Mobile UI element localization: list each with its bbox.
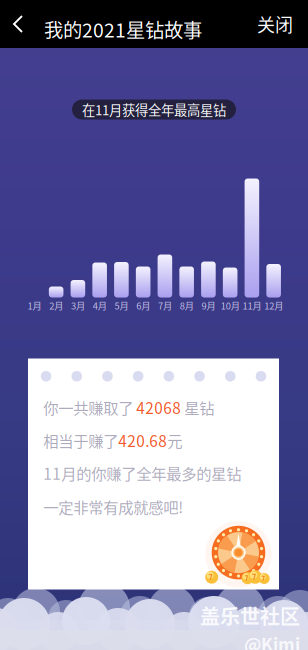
staticText: 11月 — [242, 299, 261, 312]
staticText: 11月的你赚了全年最多的星钻 — [43, 462, 241, 484]
staticText: 关闭 — [257, 11, 293, 37]
staticText: 6月 — [136, 299, 150, 312]
staticText: @Kimi — [244, 631, 300, 650]
staticText: 星钻 — [181, 396, 214, 418]
staticText: 12月 — [264, 299, 283, 312]
staticText: 你一共赚取了 — [43, 396, 136, 418]
button[interactable]: 关闭 — [252, 2, 298, 46]
staticText: 420.68 — [118, 429, 167, 451]
staticText: 3月 — [71, 299, 85, 312]
staticText: 一定非常有成就感吧! — [43, 495, 183, 518]
staticText: 9月 — [201, 299, 215, 312]
staticText: 1月 — [27, 299, 41, 312]
button[interactable]: Back — [1, 2, 35, 46]
staticText: 在11月获得全年最高星钻 — [82, 100, 226, 119]
staticText: 8月 — [180, 299, 194, 312]
staticText: 相当于赚了 — [43, 429, 118, 451]
staticText: 7月 — [158, 299, 172, 312]
staticText: 42068 — [136, 396, 181, 418]
staticText: 4月 — [93, 299, 107, 312]
staticText: 元 — [167, 429, 182, 451]
staticText: 5月 — [114, 299, 128, 312]
staticText: 10月 — [221, 299, 240, 312]
staticText: 盖乐世社区 — [200, 601, 300, 630]
staticText: 我的2021星钻故事 — [44, 15, 202, 43]
staticText: 2月 — [49, 299, 63, 312]
